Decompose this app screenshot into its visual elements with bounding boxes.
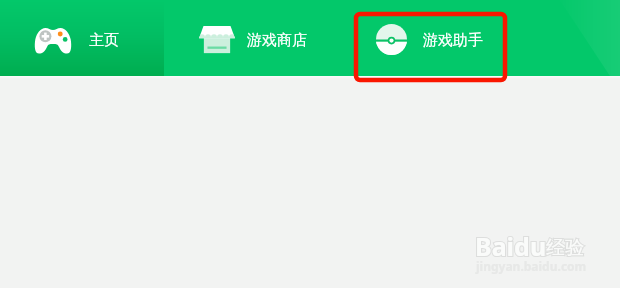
staticText: 经验 — [546, 236, 584, 260]
button[interactable]: 主页 tab, selected — [0, 0, 164, 76]
staticText: jingyan.baidu.com — [476, 258, 587, 274]
staticText: Baidu — [475, 229, 547, 263]
staticText: 游戏商店 — [247, 31, 307, 50]
staticText: 游戏助手 — [423, 31, 483, 50]
button[interactable]: 游戏商店 tab — [164, 0, 356, 76]
staticText: 经验 — [546, 236, 584, 260]
staticText: 主页 — [89, 31, 119, 50]
button[interactable]: 游戏助手 tab — [356, 0, 620, 76]
staticText: Baidu — [475, 229, 547, 263]
